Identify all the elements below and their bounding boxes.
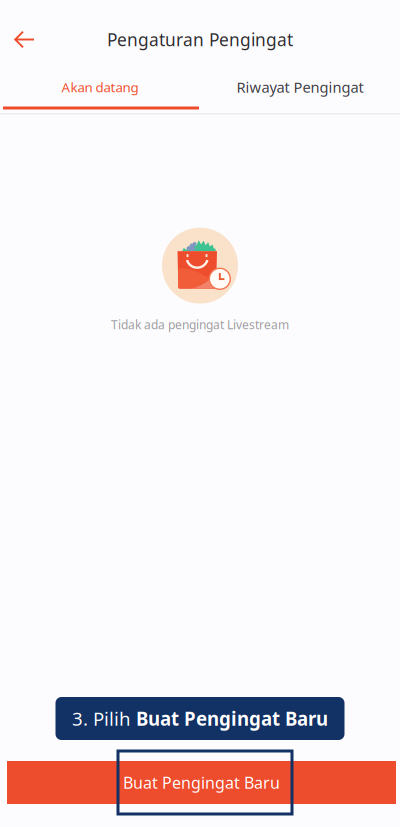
staticText: Buat Pengingat Baru — [136, 706, 328, 731]
staticText: Riwayat Pengingat — [236, 77, 363, 97]
button[interactable]: Akan datang — [0, 64, 200, 109]
staticText: 3. Pilih — [72, 706, 136, 731]
staticText: Akan datang — [61, 78, 138, 96]
button[interactable]: Riwayat Pengingat — [200, 64, 400, 109]
staticText: Tidak ada pengingat Livestream — [111, 317, 289, 332]
button[interactable]: Buat Pengingat Baru — [7, 761, 396, 804]
button[interactable]: Back — [0, 17, 48, 62]
staticText: Pengaturan Pengingat — [107, 28, 293, 51]
staticText: Buat Pengingat Baru — [123, 772, 280, 793]
